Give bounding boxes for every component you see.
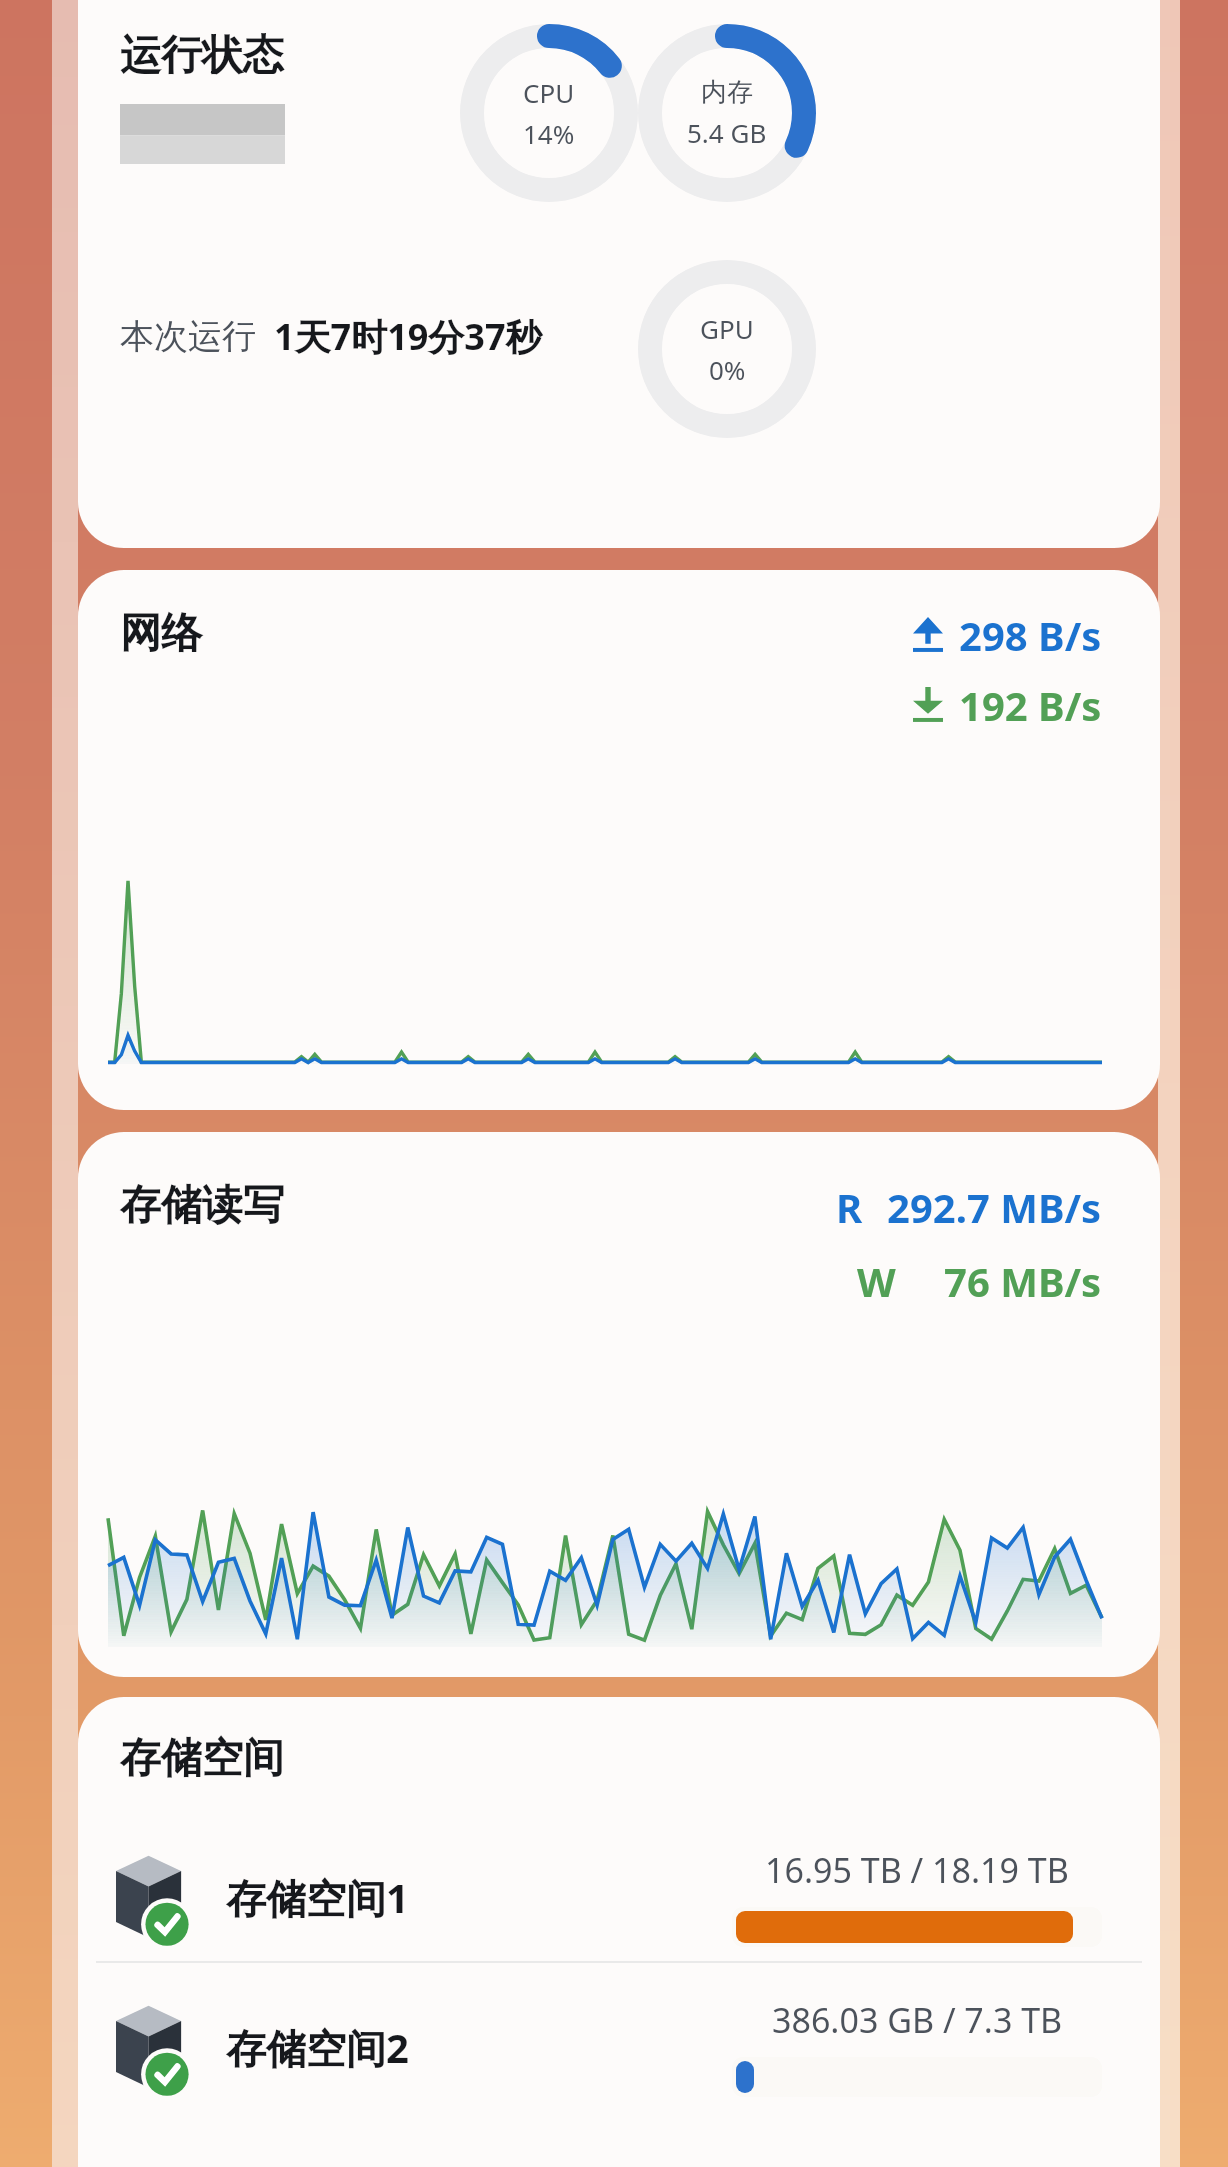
staticText: 存储读写 (120, 1180, 284, 1232)
button[interactable]: Storage volume 存储空间2 (78, 1997, 1160, 2097)
staticText: 存储空间1 (226, 1870, 409, 1925)
staticText: 本次运行 (120, 315, 256, 358)
staticText: 292.7 MB/s (887, 1180, 1102, 1234)
staticText: W (857, 1254, 896, 1308)
button[interactable]: 网络 (78, 570, 1160, 1110)
button[interactable]: 运行状态 (78, 0, 1160, 548)
staticText: 1天7时19分37秒 (274, 312, 542, 361)
staticText: 0% (709, 352, 746, 387)
other: Storage volume 存储空间1 (116, 1853, 204, 1941)
button[interactable]: 存储读写 (78, 1132, 1160, 1677)
staticText: 运行状态 (120, 30, 284, 82)
staticText: GPU (700, 311, 754, 346)
staticText: 386.03 GB / 7.3 TB (772, 1997, 1063, 2043)
staticText: 16.95 TB / 18.19 TB (765, 1847, 1069, 1893)
staticText: 内存 (701, 76, 753, 109)
staticText: 298 B/s (959, 608, 1102, 662)
staticText: 存储空间 (120, 1733, 284, 1785)
staticText: R (836, 1180, 863, 1234)
staticText: 192 B/s (959, 678, 1102, 732)
other: Storage volume 存储空间2 (116, 2003, 204, 2091)
staticText: 网络 (120, 608, 202, 660)
staticText: 76 MB/s (944, 1254, 1102, 1308)
button[interactable]: Storage volume 存储空间1 (78, 1847, 1160, 1947)
staticText: CPU (523, 75, 575, 110)
staticText: 存储空间2 (226, 2020, 409, 2075)
staticText: 14% (523, 116, 575, 151)
staticText: 5.4 GB (687, 115, 767, 150)
